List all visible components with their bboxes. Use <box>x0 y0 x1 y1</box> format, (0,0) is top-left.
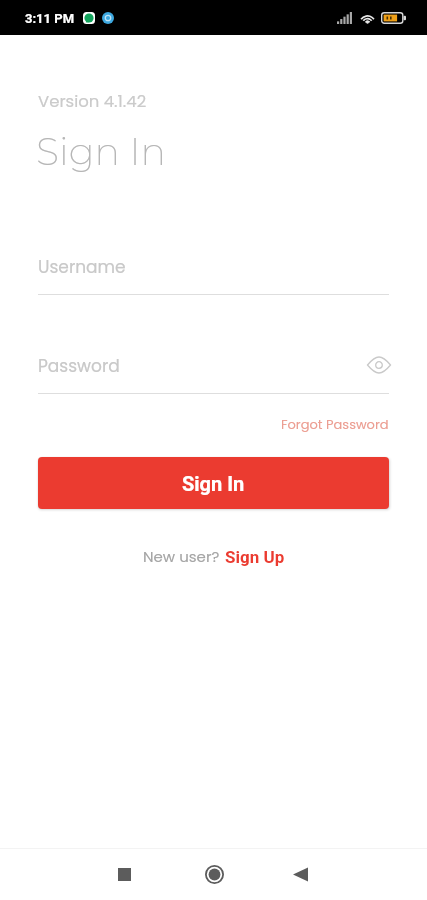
button[interactable]: Home <box>190 850 238 898</box>
staticText: 3:11 PM <box>25 11 75 26</box>
staticText: Sign Up <box>225 547 285 567</box>
staticText: Forgot Password <box>281 415 389 433</box>
button[interactable]: Recent apps <box>100 850 149 898</box>
button[interactable]: Back <box>276 850 324 898</box>
staticText: Sign In <box>36 128 166 174</box>
button[interactable]: Forgot Password <box>281 415 389 433</box>
staticText: Sign In <box>182 472 245 495</box>
staticText: New user? <box>143 546 220 567</box>
button[interactable]: New user? <box>143 546 285 567</box>
button[interactable]: Show password <box>365 351 393 379</box>
staticText: Username <box>38 255 126 279</box>
staticText: Version 4.1.42 <box>38 90 147 113</box>
staticText: Password <box>38 354 120 378</box>
button[interactable]: Sign In <box>38 457 389 509</box>
